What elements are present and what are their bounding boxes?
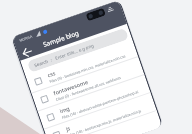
button[interactable]: fontawesome [31, 57, 144, 112]
button[interactable]: Search [27, 28, 129, 73]
button[interactable]: pl [50, 111, 162, 134]
staticText: Enter title... e.g png [54, 42, 95, 61]
staticText: : [49, 56, 53, 62]
staticText: js [65, 124, 72, 132]
button[interactable]: Back [19, 44, 36, 61]
staticText: Files (9) - bootstrap.min.css, materiali… [49, 53, 126, 84]
staticText: Sample blog [42, 28, 81, 49]
staticText: Search [33, 58, 49, 68]
staticText: MOTOLA [19, 34, 33, 43]
staticText: img [59, 104, 71, 114]
staticText: css [46, 69, 57, 78]
button[interactable]: img [38, 75, 151, 130]
staticText: Files (18) - bootstrap.min.js, materiali… [67, 108, 142, 134]
staticText: fontawesome [52, 78, 90, 96]
staticText: Files (16) - abstract-white-parttern-pho… [61, 89, 139, 120]
button[interactable]: js [44, 93, 157, 134]
button[interactable]: css [25, 39, 138, 94]
staticText: Class (2) - fontawesome.all.css, webfont… [55, 75, 122, 102]
